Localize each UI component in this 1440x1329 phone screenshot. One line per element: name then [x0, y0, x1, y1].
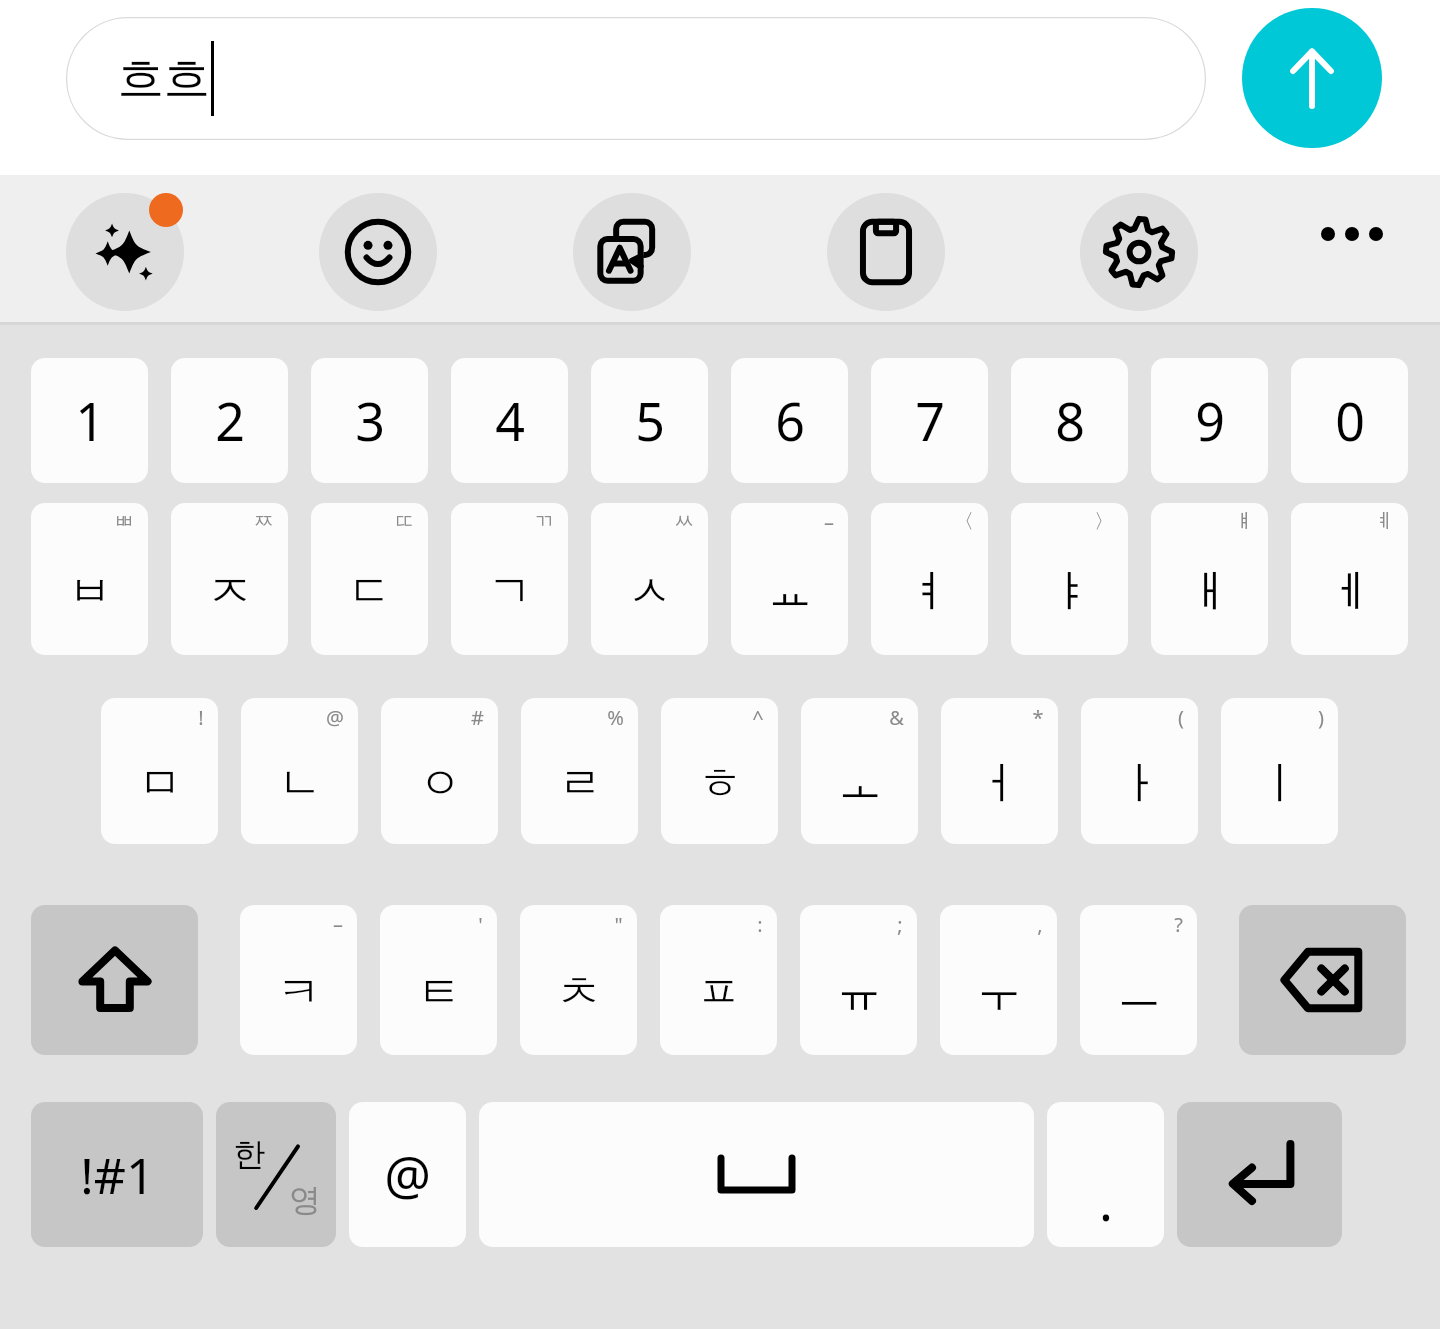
button[interactable]: AI assist: [66, 193, 184, 311]
staticText: 6: [775, 385, 805, 456]
staticText: ,: [1037, 911, 1043, 938]
staticText: ㅣ: [1258, 756, 1302, 811]
button[interactable]: ): [1221, 698, 1338, 844]
staticText: 9: [1195, 385, 1225, 456]
button[interactable]: 1: [31, 358, 148, 483]
staticText: ㅜ: [977, 965, 1021, 1020]
button[interactable]: Settings: [1080, 193, 1198, 311]
staticText: %: [607, 704, 624, 731]
staticText: (: [1178, 704, 1184, 731]
staticText: 4: [495, 385, 525, 456]
staticText: ㅒ: [1234, 509, 1254, 534]
button[interactable]: Korean English toggle: [216, 1102, 336, 1247]
button[interactable]: ㅃ: [31, 503, 148, 655]
staticText: ㄹ: [558, 756, 602, 811]
staticText: 영: [289, 1180, 321, 1220]
button[interactable]: ㅉ: [171, 503, 288, 655]
button[interactable]: ;: [800, 905, 917, 1055]
button[interactable]: .: [1047, 1102, 1164, 1247]
button[interactable]: 〈: [871, 503, 988, 655]
button[interactable]: @: [241, 698, 358, 844]
staticText: ;: [897, 911, 903, 938]
button[interactable]: Emoji: [319, 193, 437, 311]
staticText: ㅊ: [557, 965, 601, 1020]
staticText: 8: [1055, 385, 1085, 456]
button[interactable]: 9: [1151, 358, 1268, 483]
staticText: ㄷ: [348, 564, 392, 619]
button[interactable]: Space: [479, 1102, 1034, 1247]
button[interactable]: ": [520, 905, 637, 1055]
button[interactable]: ㅒ: [1151, 503, 1268, 655]
staticText: !#1: [80, 1141, 155, 1209]
button[interactable]: 3: [311, 358, 428, 483]
button[interactable]: 2: [171, 358, 288, 483]
staticText: 1: [75, 385, 105, 456]
button[interactable]: 8: [1011, 358, 1128, 483]
staticText: ㅔ: [1328, 564, 1372, 619]
staticText: 0: [1335, 385, 1365, 456]
button[interactable]: (: [1081, 698, 1198, 844]
staticText: ㄲ: [534, 509, 554, 534]
button[interactable]: #: [381, 698, 498, 844]
staticText: *: [1032, 704, 1044, 731]
button[interactable]: !: [101, 698, 218, 844]
button[interactable]: &: [801, 698, 918, 844]
button[interactable]: 0: [1291, 358, 1408, 483]
staticText: 〉: [1094, 509, 1114, 534]
button[interactable]: :: [660, 905, 777, 1055]
staticText: ): [1318, 704, 1324, 731]
button[interactable]: Clipboard: [827, 193, 945, 311]
button[interactable]: Enter: [1177, 1102, 1342, 1247]
button[interactable]: 6: [731, 358, 848, 483]
button[interactable]: Backspace: [1239, 905, 1406, 1055]
staticText: ㄴ: [278, 756, 322, 811]
staticText: ?: [1174, 911, 1183, 938]
staticText: ㅆ: [674, 509, 694, 534]
staticText: –: [333, 911, 343, 938]
button[interactable]: !#1: [31, 1102, 203, 1247]
button[interactable]: ㄸ: [311, 503, 428, 655]
staticText: ㅁ: [138, 756, 182, 811]
button[interactable]: ^: [661, 698, 778, 844]
staticText: .: [1099, 1165, 1113, 1236]
button[interactable]: More options: [1293, 175, 1411, 293]
button[interactable]: Shift: [31, 905, 198, 1055]
button[interactable]: %: [521, 698, 638, 844]
staticText: @: [384, 1139, 431, 1210]
staticText: ㅅ: [628, 564, 672, 619]
button[interactable]: Translate: [573, 193, 691, 311]
button[interactable]: *: [941, 698, 1058, 844]
button[interactable]: ?: [1080, 905, 1197, 1055]
button[interactable]: ㄲ: [451, 503, 568, 655]
button[interactable]: Send: [1242, 8, 1382, 148]
staticText: 흐흐: [118, 50, 210, 108]
button[interactable]: @: [349, 1102, 466, 1247]
staticText: ㅓ: [978, 756, 1022, 811]
staticText: ㅡ: [1117, 965, 1161, 1020]
button[interactable]: 5: [591, 358, 708, 483]
staticText: ㅉ: [254, 509, 274, 534]
button[interactable]: ': [380, 905, 497, 1055]
staticText: ^: [752, 704, 764, 731]
button[interactable]: 흐흐: [66, 17, 1206, 140]
button[interactable]: ㅖ: [1291, 503, 1408, 655]
staticText: ': [478, 911, 483, 938]
button[interactable]: –: [240, 905, 357, 1055]
button[interactable]: 〉: [1011, 503, 1128, 655]
staticText: :: [757, 911, 763, 938]
staticText: ㅍ: [697, 965, 741, 1020]
staticText: ㅑ: [1048, 564, 1092, 619]
staticText: 2: [215, 385, 245, 456]
button[interactable]: ,: [940, 905, 1057, 1055]
button[interactable]: 4: [451, 358, 568, 483]
button[interactable]: –: [731, 503, 848, 655]
staticText: ㅂ: [68, 564, 112, 619]
staticText: ㄸ: [394, 509, 414, 534]
button[interactable]: ㅆ: [591, 503, 708, 655]
button[interactable]: 7: [871, 358, 988, 483]
staticText: ㅕ: [908, 564, 952, 619]
staticText: 3: [355, 385, 385, 456]
staticText: ㄱ: [488, 564, 532, 619]
staticText: ㅇ: [418, 756, 462, 811]
staticText: 한: [233, 1134, 265, 1174]
